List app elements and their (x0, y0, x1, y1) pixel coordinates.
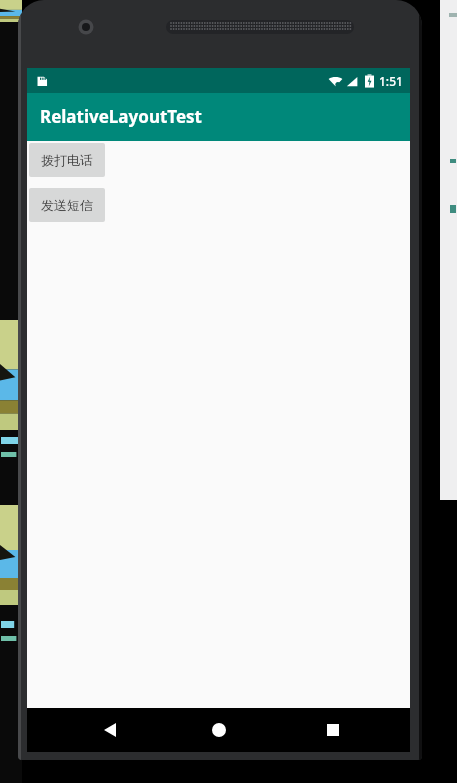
staticText: 1:51 (379, 73, 403, 89)
button[interactable]: 发送短信 (29, 188, 105, 222)
button[interactable]: Home (203, 714, 235, 746)
button[interactable]: 拨打电话 (29, 143, 105, 177)
button[interactable]: Back (95, 715, 125, 745)
staticText: 发送短信 (41, 197, 93, 213)
staticText: RelativeLayoutTest (40, 105, 202, 128)
button[interactable]: Recent apps (318, 715, 348, 745)
staticText: 拨打电话 (41, 152, 93, 168)
